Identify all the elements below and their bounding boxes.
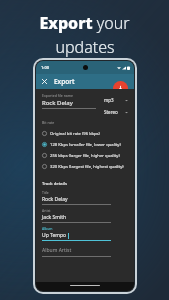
staticText: Rock Delay [42, 196, 68, 203]
staticText: Title [42, 190, 49, 195]
staticText: Export [54, 77, 75, 86]
staticText: Up Tempo [42, 232, 67, 239]
staticText: Original bit rate (96 kbps) [50, 131, 100, 137]
staticText: Track details [42, 181, 68, 187]
staticText: updates [55, 36, 115, 58]
button[interactable]: Album [42, 226, 111, 241]
button[interactable]: Export download [113, 81, 128, 96]
staticText: Bit rate [42, 120, 55, 125]
button[interactable]: Close [39, 76, 50, 87]
staticText: Artist [42, 208, 51, 213]
button[interactable]: Stereo [104, 109, 128, 115]
staticText: 128 Kbps (smaller file, lower quality) [50, 142, 121, 148]
button[interactable]: 320 Kbps (largest file, highest quality) [42, 161, 128, 172]
staticText: 256 kbps (larger file, higher quality) [50, 153, 120, 159]
button[interactable]: Title [42, 190, 111, 205]
button[interactable]: 256 kbps (larger file, higher quality) [42, 150, 128, 161]
button[interactable]: Original bit rate (96 kbps) [42, 128, 128, 139]
staticText: Rock Delay [42, 99, 73, 107]
staticText: Album Artist [42, 247, 72, 254]
staticText: Jack Smith [42, 214, 67, 221]
button[interactable]: mp3 [104, 97, 128, 103]
staticText: Album [42, 226, 53, 231]
button[interactable]: Artist [42, 208, 111, 223]
button[interactable]: 128 Kbps (smaller file, lower quality) [42, 139, 128, 150]
staticText: mp3 [104, 97, 114, 103]
staticText: Stereo [104, 109, 118, 115]
staticText: Exported file name [42, 93, 74, 98]
staticText: 1:00 [41, 65, 49, 70]
button[interactable]: Album Artist [42, 247, 111, 257]
staticText: 320 Kbps (largest file, highest quality) [50, 164, 124, 170]
staticText: Export your [39, 12, 130, 34]
